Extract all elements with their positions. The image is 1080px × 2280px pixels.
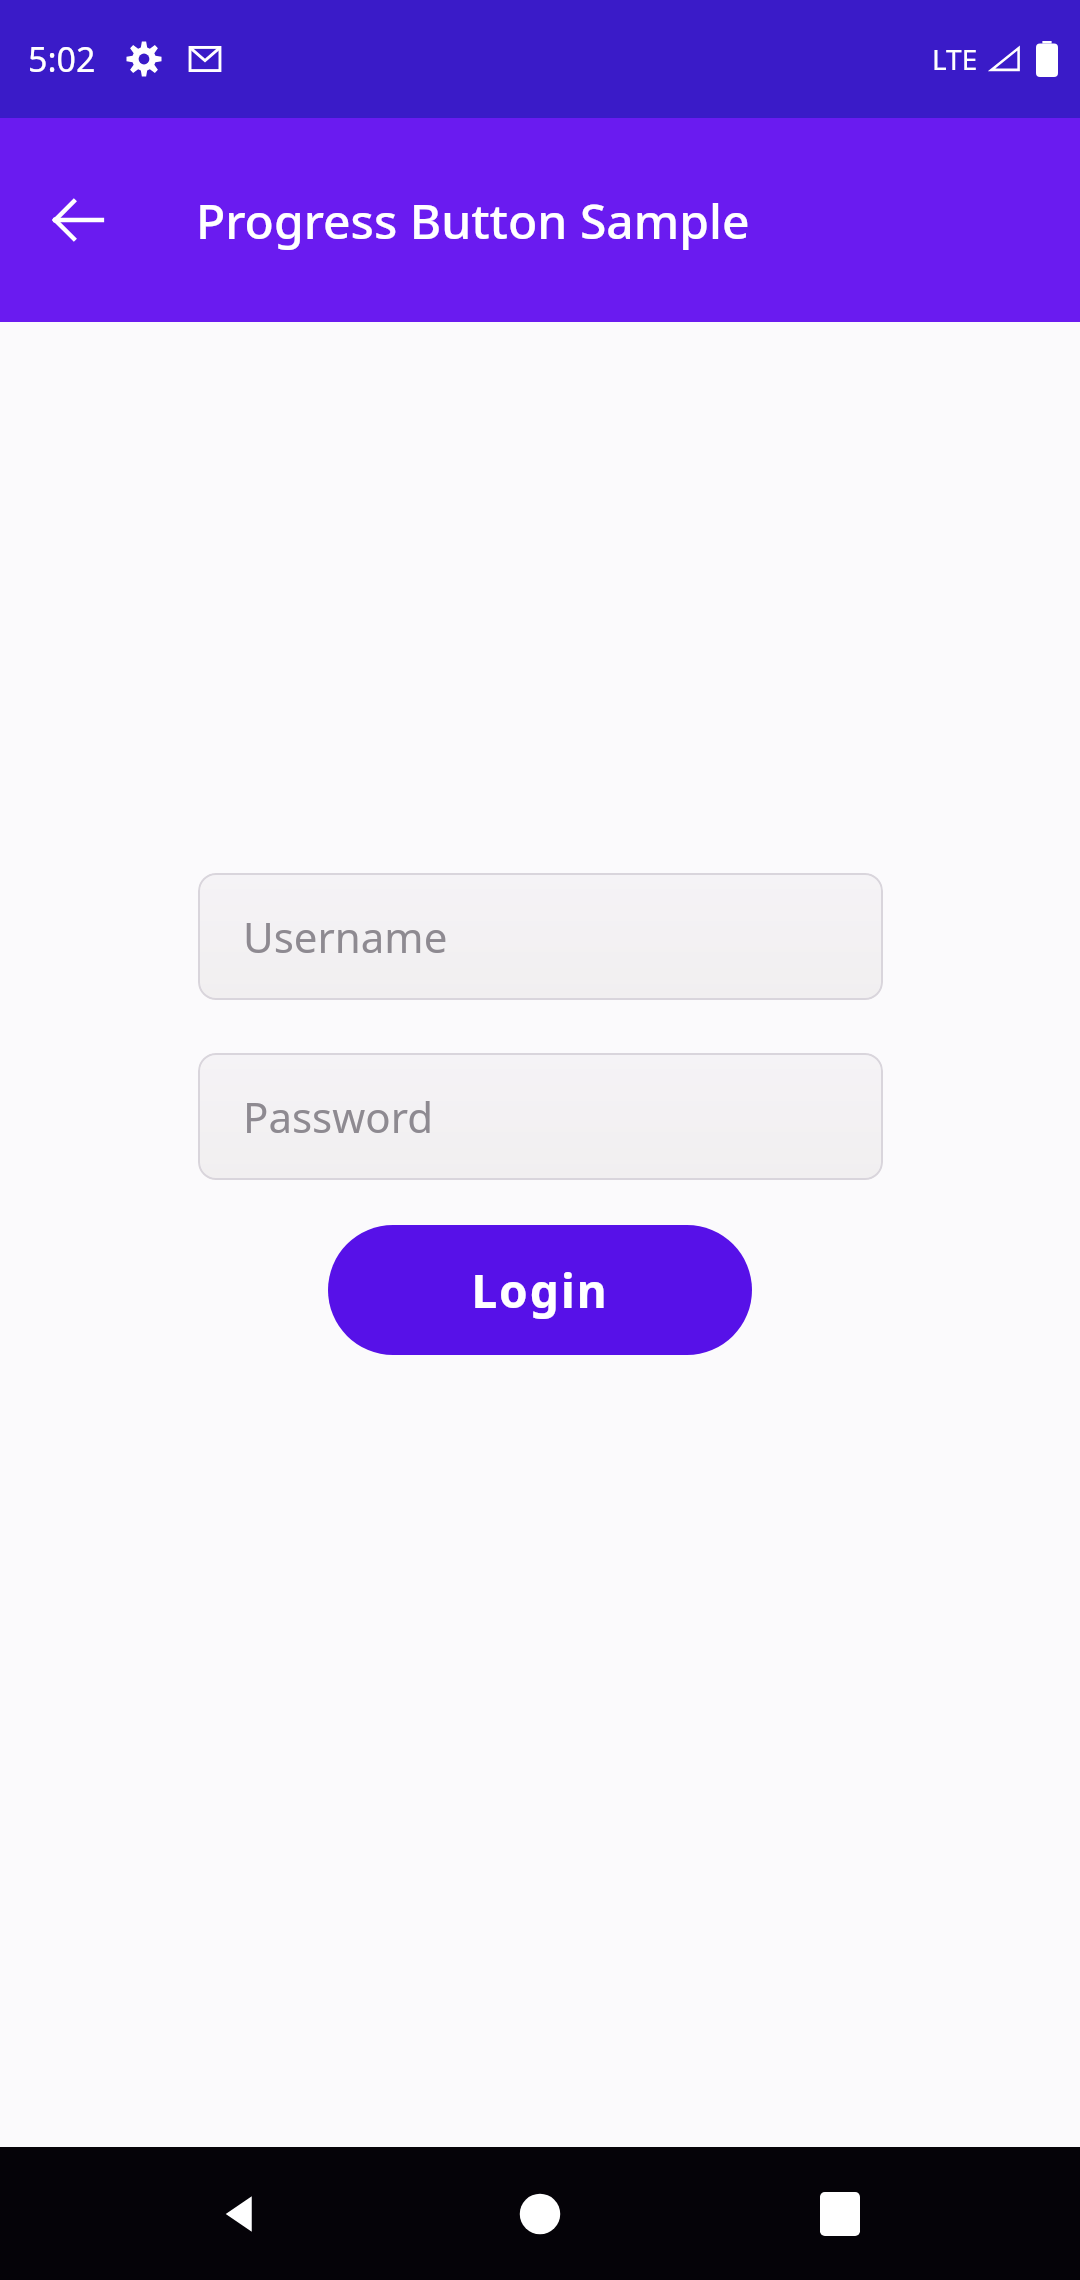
staticText: Login	[471, 1259, 609, 1322]
staticText: Password	[243, 1088, 433, 1145]
button[interactable]: Password	[198, 1053, 883, 1180]
button[interactable]: Back	[180, 2154, 300, 2274]
staticText: Username	[243, 908, 448, 965]
button[interactable]: Login	[328, 1225, 752, 1355]
staticText: Progress Button Sample	[196, 188, 750, 253]
staticText: 5:02	[28, 36, 96, 82]
button[interactable]: Recent apps	[780, 2154, 900, 2274]
button[interactable]: Home	[480, 2154, 600, 2274]
button[interactable]: Username	[198, 873, 883, 1000]
staticText: LTE	[932, 40, 978, 78]
button[interactable]: Back	[32, 174, 124, 266]
